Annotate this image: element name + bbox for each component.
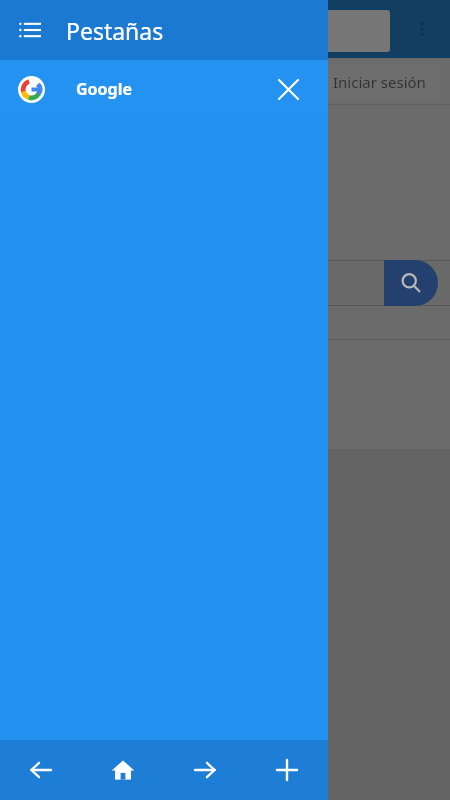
staticText: Iniciar sesión	[333, 72, 426, 92]
button[interactable]: Tab list	[6, 6, 54, 54]
button[interactable]: Iniciar sesión	[319, 64, 440, 100]
button[interactable]: New tab	[246, 740, 328, 800]
button[interactable]: Search	[384, 260, 438, 306]
button[interactable]: Google	[0, 60, 328, 118]
staticText: Google	[76, 78, 264, 100]
button[interactable]: Forward	[164, 740, 246, 800]
button[interactable]: Home	[82, 740, 164, 800]
staticText: Pestañas	[66, 15, 164, 46]
button[interactable]: Close tab	[264, 65, 312, 113]
button[interactable]: Back	[0, 740, 82, 800]
button[interactable]	[140, 10, 390, 52]
